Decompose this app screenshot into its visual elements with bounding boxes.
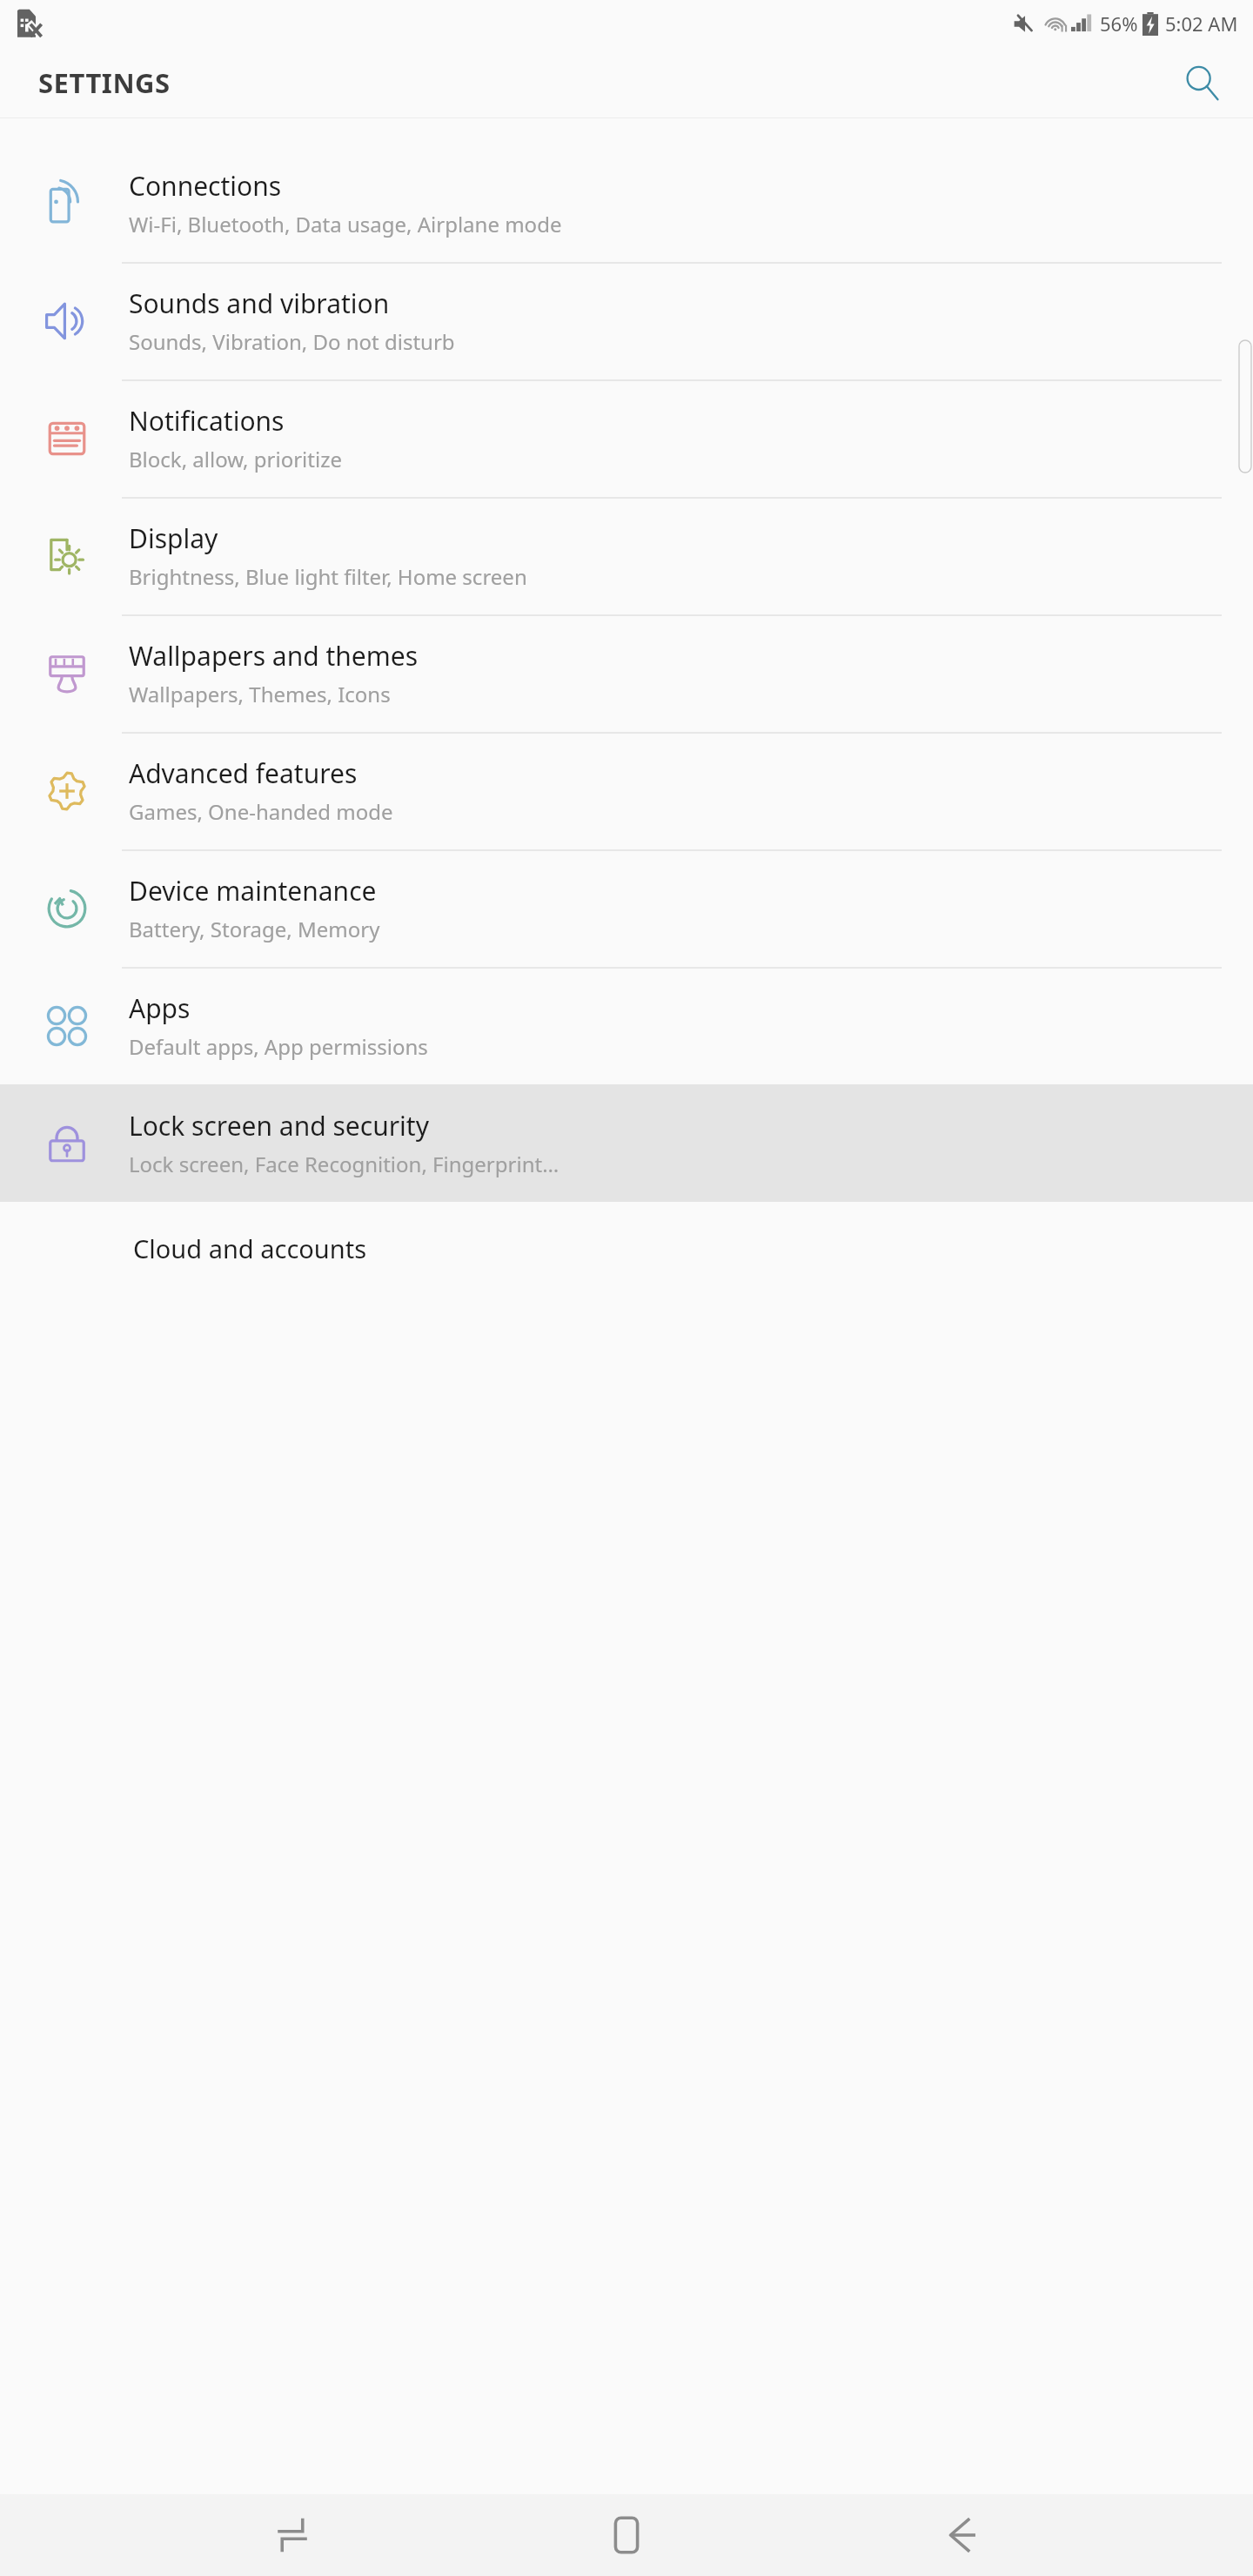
button[interactable]: Recents xyxy=(250,2494,335,2576)
staticText: Lock screen and security xyxy=(129,1108,429,1144)
button[interactable]: Notifications xyxy=(0,379,1253,497)
staticText: Lock screen, Face Recognition, Fingerpri… xyxy=(129,1150,559,1178)
staticText: Connections xyxy=(129,168,282,204)
staticText: Games, One-handed mode xyxy=(129,797,393,826)
button[interactable]: Back xyxy=(919,2494,1004,2576)
staticText: Advanced features xyxy=(129,755,358,791)
staticText: Apps xyxy=(129,990,191,1026)
button[interactable]: Connections xyxy=(0,144,1253,262)
button[interactable]: Search xyxy=(1173,54,1230,111)
staticText: Sounds, Vibration, Do not disturb xyxy=(129,327,455,356)
button[interactable]: Home xyxy=(584,2494,669,2576)
staticText: Device maintenance xyxy=(129,873,377,909)
staticText: SETTINGS xyxy=(38,64,171,101)
button[interactable]: Device maintenance xyxy=(0,849,1253,967)
button[interactable]: Lock screen and security xyxy=(0,1084,1253,1202)
button[interactable]: Wallpapers and themes xyxy=(0,614,1253,732)
staticText: 56% xyxy=(1100,10,1138,37)
button[interactable]: Advanced features xyxy=(0,732,1253,849)
staticText: Cloud and accounts xyxy=(133,1231,367,1265)
button[interactable]: Apps xyxy=(0,967,1253,1084)
staticText: Brightness, Blue light filter, Home scre… xyxy=(129,562,527,591)
staticText: Default apps, App permissions xyxy=(129,1032,428,1061)
staticText: Notifications xyxy=(129,403,285,439)
staticText: Wallpapers and themes xyxy=(129,638,419,674)
staticText: Sounds and vibration xyxy=(129,285,390,321)
button[interactable]: Sounds and vibration xyxy=(0,262,1253,379)
button[interactable]: Display xyxy=(0,497,1253,614)
staticText: Wi-Fi, Bluetooth, Data usage, Airplane m… xyxy=(129,210,562,238)
staticText: 5:02 AM xyxy=(1165,10,1238,37)
staticText: Wallpapers, Themes, Icons xyxy=(129,680,391,708)
staticText: Display xyxy=(129,520,218,556)
staticText: Battery, Storage, Memory xyxy=(129,915,380,943)
staticText: Block, allow, prioritize xyxy=(129,445,342,473)
